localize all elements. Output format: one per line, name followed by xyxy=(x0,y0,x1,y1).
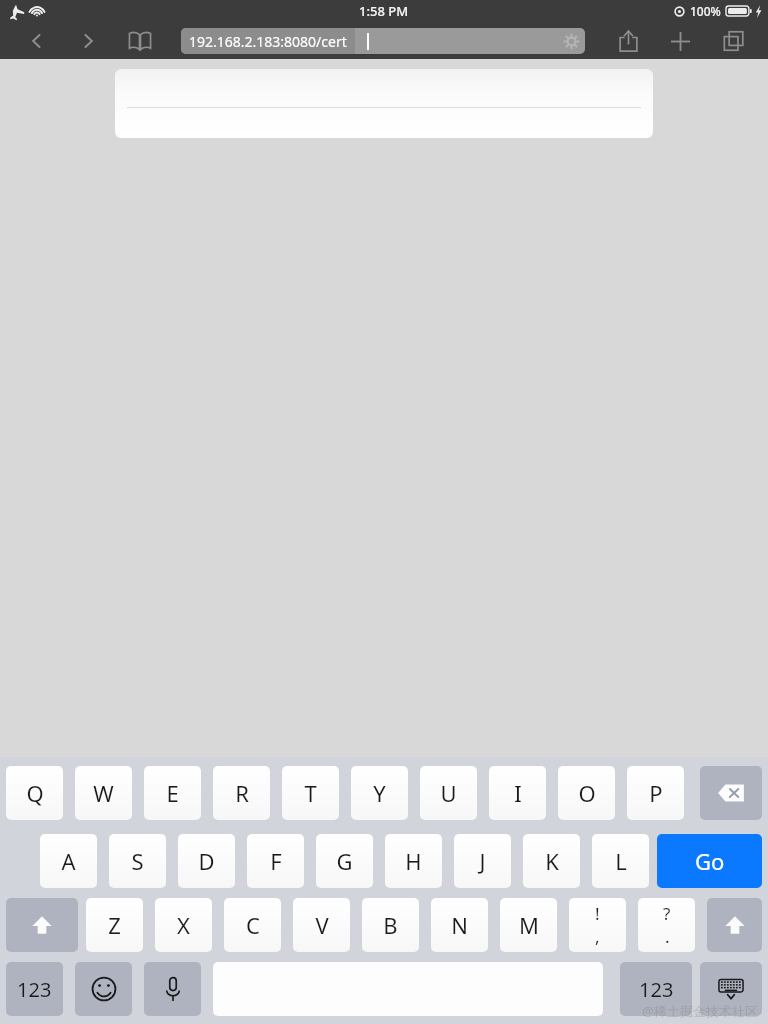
button[interactable]: O xyxy=(558,766,615,820)
button[interactable]: R xyxy=(213,766,270,820)
button[interactable]: ? xyxy=(638,898,695,952)
staticText: ? xyxy=(663,902,671,925)
staticText: D xyxy=(198,846,215,876)
staticText: J xyxy=(479,846,486,876)
button[interactable]: Emoji xyxy=(75,962,132,1016)
button[interactable]: G xyxy=(316,834,373,888)
staticText: U xyxy=(440,778,457,808)
staticText: ! xyxy=(595,902,600,925)
staticText: X xyxy=(177,910,190,940)
staticText: , xyxy=(595,925,600,948)
staticText: P xyxy=(649,778,663,808)
staticText: Q xyxy=(26,778,44,808)
staticText: . xyxy=(665,925,670,948)
button[interactable]: D xyxy=(178,834,235,888)
staticText: H xyxy=(405,846,422,876)
staticText: R xyxy=(235,778,249,808)
staticText: Z xyxy=(108,910,121,940)
staticText: Go xyxy=(695,846,725,876)
button[interactable]: M xyxy=(500,898,557,952)
button[interactable]: Shift xyxy=(6,898,78,952)
button[interactable]: C xyxy=(224,898,281,952)
staticText: L xyxy=(615,846,627,876)
button[interactable]: Hide keyboard xyxy=(700,962,762,1016)
button[interactable]: W xyxy=(75,766,132,820)
button[interactable]: X xyxy=(155,898,212,952)
button[interactable]: P xyxy=(627,766,684,820)
staticText: A xyxy=(61,846,76,876)
button[interactable]: Z xyxy=(86,898,143,952)
button[interactable]: Y xyxy=(351,766,408,820)
button[interactable]: Go xyxy=(657,834,762,888)
staticText: B xyxy=(383,910,398,940)
button[interactable]: 192.168.2.183:8080/cert xyxy=(181,28,585,54)
staticText: G xyxy=(336,846,353,876)
staticText: 123 xyxy=(639,976,674,1003)
button[interactable]: K xyxy=(523,834,580,888)
button[interactable]: H xyxy=(385,834,442,888)
button[interactable]: I xyxy=(489,766,546,820)
button[interactable]: L xyxy=(592,834,649,888)
button[interactable]: S xyxy=(109,834,166,888)
staticText: I xyxy=(514,778,522,808)
button[interactable]: Bookmarks xyxy=(122,23,158,59)
staticText: K xyxy=(545,846,559,876)
staticText: T xyxy=(304,778,317,808)
button[interactable]: Forward xyxy=(71,24,105,58)
staticText: E xyxy=(166,778,179,808)
button[interactable]: U xyxy=(420,766,477,820)
staticText: @稀土掘金技术社区 xyxy=(642,1002,758,1020)
button[interactable]: Numbers xyxy=(620,962,692,1016)
button[interactable]: Dictate xyxy=(144,962,201,1016)
button[interactable]: Shift xyxy=(707,898,762,952)
button[interactable]: V xyxy=(293,898,350,952)
button[interactable]: T xyxy=(282,766,339,820)
button[interactable]: Numbers xyxy=(6,962,63,1016)
staticText: 1:58 PM xyxy=(359,2,409,20)
button[interactable]: Share xyxy=(610,23,646,59)
button[interactable]: J xyxy=(454,834,511,888)
button[interactable]: New Tab xyxy=(662,23,698,59)
staticText: S xyxy=(131,846,144,876)
button[interactable]: Q xyxy=(6,766,63,820)
button[interactable]: E xyxy=(144,766,201,820)
button[interactable]: Backspace xyxy=(700,766,762,820)
button[interactable]: Back xyxy=(20,24,54,58)
button[interactable]: N xyxy=(431,898,488,952)
staticText: C xyxy=(246,910,260,940)
staticText: V xyxy=(315,910,329,940)
staticText: W xyxy=(93,778,114,808)
button[interactable]: Tabs xyxy=(716,23,752,59)
staticText: 192.168.2.183:8080/cert xyxy=(189,32,347,51)
button[interactable]: F xyxy=(247,834,304,888)
staticText: 123 xyxy=(17,976,52,1003)
staticText: F xyxy=(270,846,282,876)
staticText: N xyxy=(451,910,468,940)
staticText: O xyxy=(578,778,596,808)
button[interactable]: ! xyxy=(569,898,626,952)
staticText: Y xyxy=(373,778,386,808)
button[interactable]: A xyxy=(40,834,97,888)
staticText: 100% xyxy=(690,3,721,19)
button[interactable]: B xyxy=(362,898,419,952)
staticText: M xyxy=(519,910,539,940)
